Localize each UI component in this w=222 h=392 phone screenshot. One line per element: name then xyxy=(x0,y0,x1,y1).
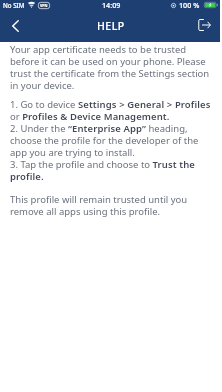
staticText: 14:09 xyxy=(102,0,121,10)
staticText: 100 % xyxy=(179,0,200,10)
staticText: VPN xyxy=(40,3,48,8)
staticText: HELP xyxy=(97,19,125,33)
staticText: Your app certificate needs to be trusted… xyxy=(10,43,212,92)
staticText: 1. Go to device Settings > General > Pro… xyxy=(10,98,212,183)
button[interactable]: Log out xyxy=(189,13,219,37)
button[interactable]: Back xyxy=(0,14,30,38)
staticText: This profile will remain trusted until y… xyxy=(10,193,212,218)
staticText: No SIM xyxy=(3,1,25,9)
